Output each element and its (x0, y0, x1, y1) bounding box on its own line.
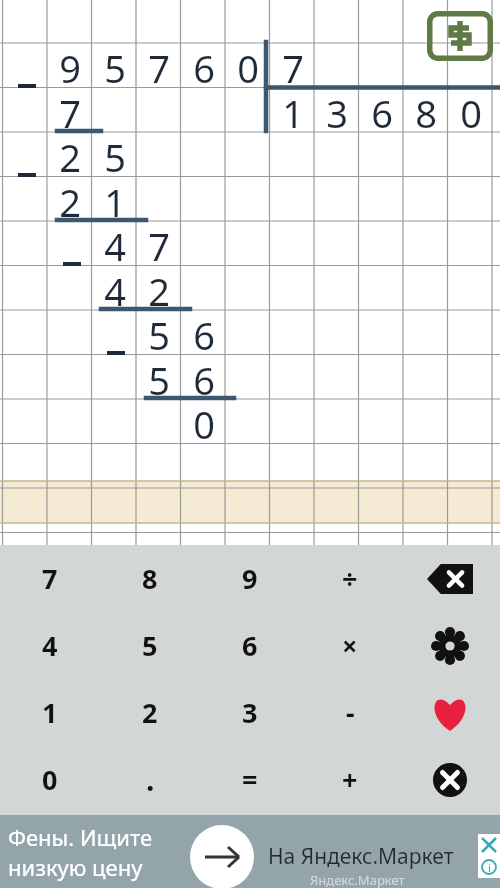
button[interactable]: + (300, 746, 400, 813)
staticText: 7 (148, 42, 170, 87)
staticText: 6 (242, 627, 258, 664)
staticText: 4 (104, 265, 126, 310)
staticText: 2 (142, 694, 158, 731)
staticText: 7 (42, 560, 58, 597)
staticText: 4 (42, 627, 58, 664)
staticText: 9 (59, 42, 81, 87)
button[interactable]: 4 (0, 612, 100, 679)
staticText: низкую цену (8, 852, 143, 882)
staticText: 0 (42, 761, 58, 798)
staticText: 2 (148, 265, 170, 310)
button[interactable]: × (300, 612, 400, 679)
staticText: 0 (460, 87, 482, 132)
staticText: 2 (59, 131, 81, 176)
staticText: 6 (371, 87, 393, 132)
button[interactable]: Settings (400, 612, 500, 679)
staticText: 5 (104, 42, 126, 87)
button[interactable]: 2 (100, 679, 200, 746)
staticText: 1 (104, 176, 126, 221)
staticText: + (342, 761, 358, 798)
staticText: 0 (237, 42, 259, 87)
staticText: 4 (104, 220, 126, 265)
staticText: 6 (193, 42, 215, 87)
button[interactable]: - (300, 679, 400, 746)
staticText: 1 (42, 694, 58, 731)
staticText: 7 (282, 42, 304, 87)
staticText: Яндекс.Маркет (310, 871, 405, 888)
staticText: 7 (59, 87, 81, 132)
button[interactable]: ÷ (300, 545, 400, 612)
button[interactable]: Фены. Ищите (0, 815, 500, 888)
staticText: i (488, 860, 491, 875)
button[interactable]: 7 (0, 545, 100, 612)
staticText: 6 (193, 309, 215, 354)
button[interactable]: 6 (200, 612, 300, 679)
button[interactable]: 8 (100, 545, 200, 612)
button[interactable]: 1 (0, 679, 100, 746)
staticText: - (346, 694, 355, 731)
staticText: 0 (193, 398, 215, 443)
button[interactable]: Ad info (478, 856, 500, 878)
staticText: 1 (282, 87, 304, 132)
button[interactable]: 0 (0, 746, 100, 813)
button[interactable]: Remove ads (427, 11, 493, 61)
staticText: 5 (104, 131, 126, 176)
staticText: × (342, 627, 358, 664)
button[interactable]: Clear (400, 746, 500, 813)
staticText: ÷ (342, 560, 358, 597)
button[interactable]: Open ad (190, 825, 254, 888)
staticText: 8 (415, 87, 437, 132)
staticText: 5 (142, 627, 158, 664)
staticText: = (242, 761, 258, 798)
button[interactable]: = (200, 746, 300, 813)
button[interactable]: Backspace (400, 545, 500, 612)
button[interactable]: . (100, 746, 200, 813)
staticText: 2 (59, 176, 81, 221)
staticText: 3 (326, 87, 348, 132)
staticText: 9 (242, 560, 258, 597)
staticText: На Яндекс.Маркет (268, 842, 454, 871)
staticText: 5 (148, 309, 170, 354)
button[interactable]: 9 (200, 545, 300, 612)
button[interactable]: Favorite (400, 679, 500, 746)
button[interactable]: 5 (100, 612, 200, 679)
button[interactable]: Close ad (478, 834, 500, 856)
staticText: Фены. Ищите (8, 822, 153, 852)
staticText: 3 (242, 694, 258, 731)
staticText: 8 (142, 560, 158, 597)
staticText: 7 (148, 220, 170, 265)
staticText: 5 (148, 354, 170, 399)
staticText: . (146, 759, 155, 800)
staticText: 6 (193, 354, 215, 399)
button[interactable]: 3 (200, 679, 300, 746)
